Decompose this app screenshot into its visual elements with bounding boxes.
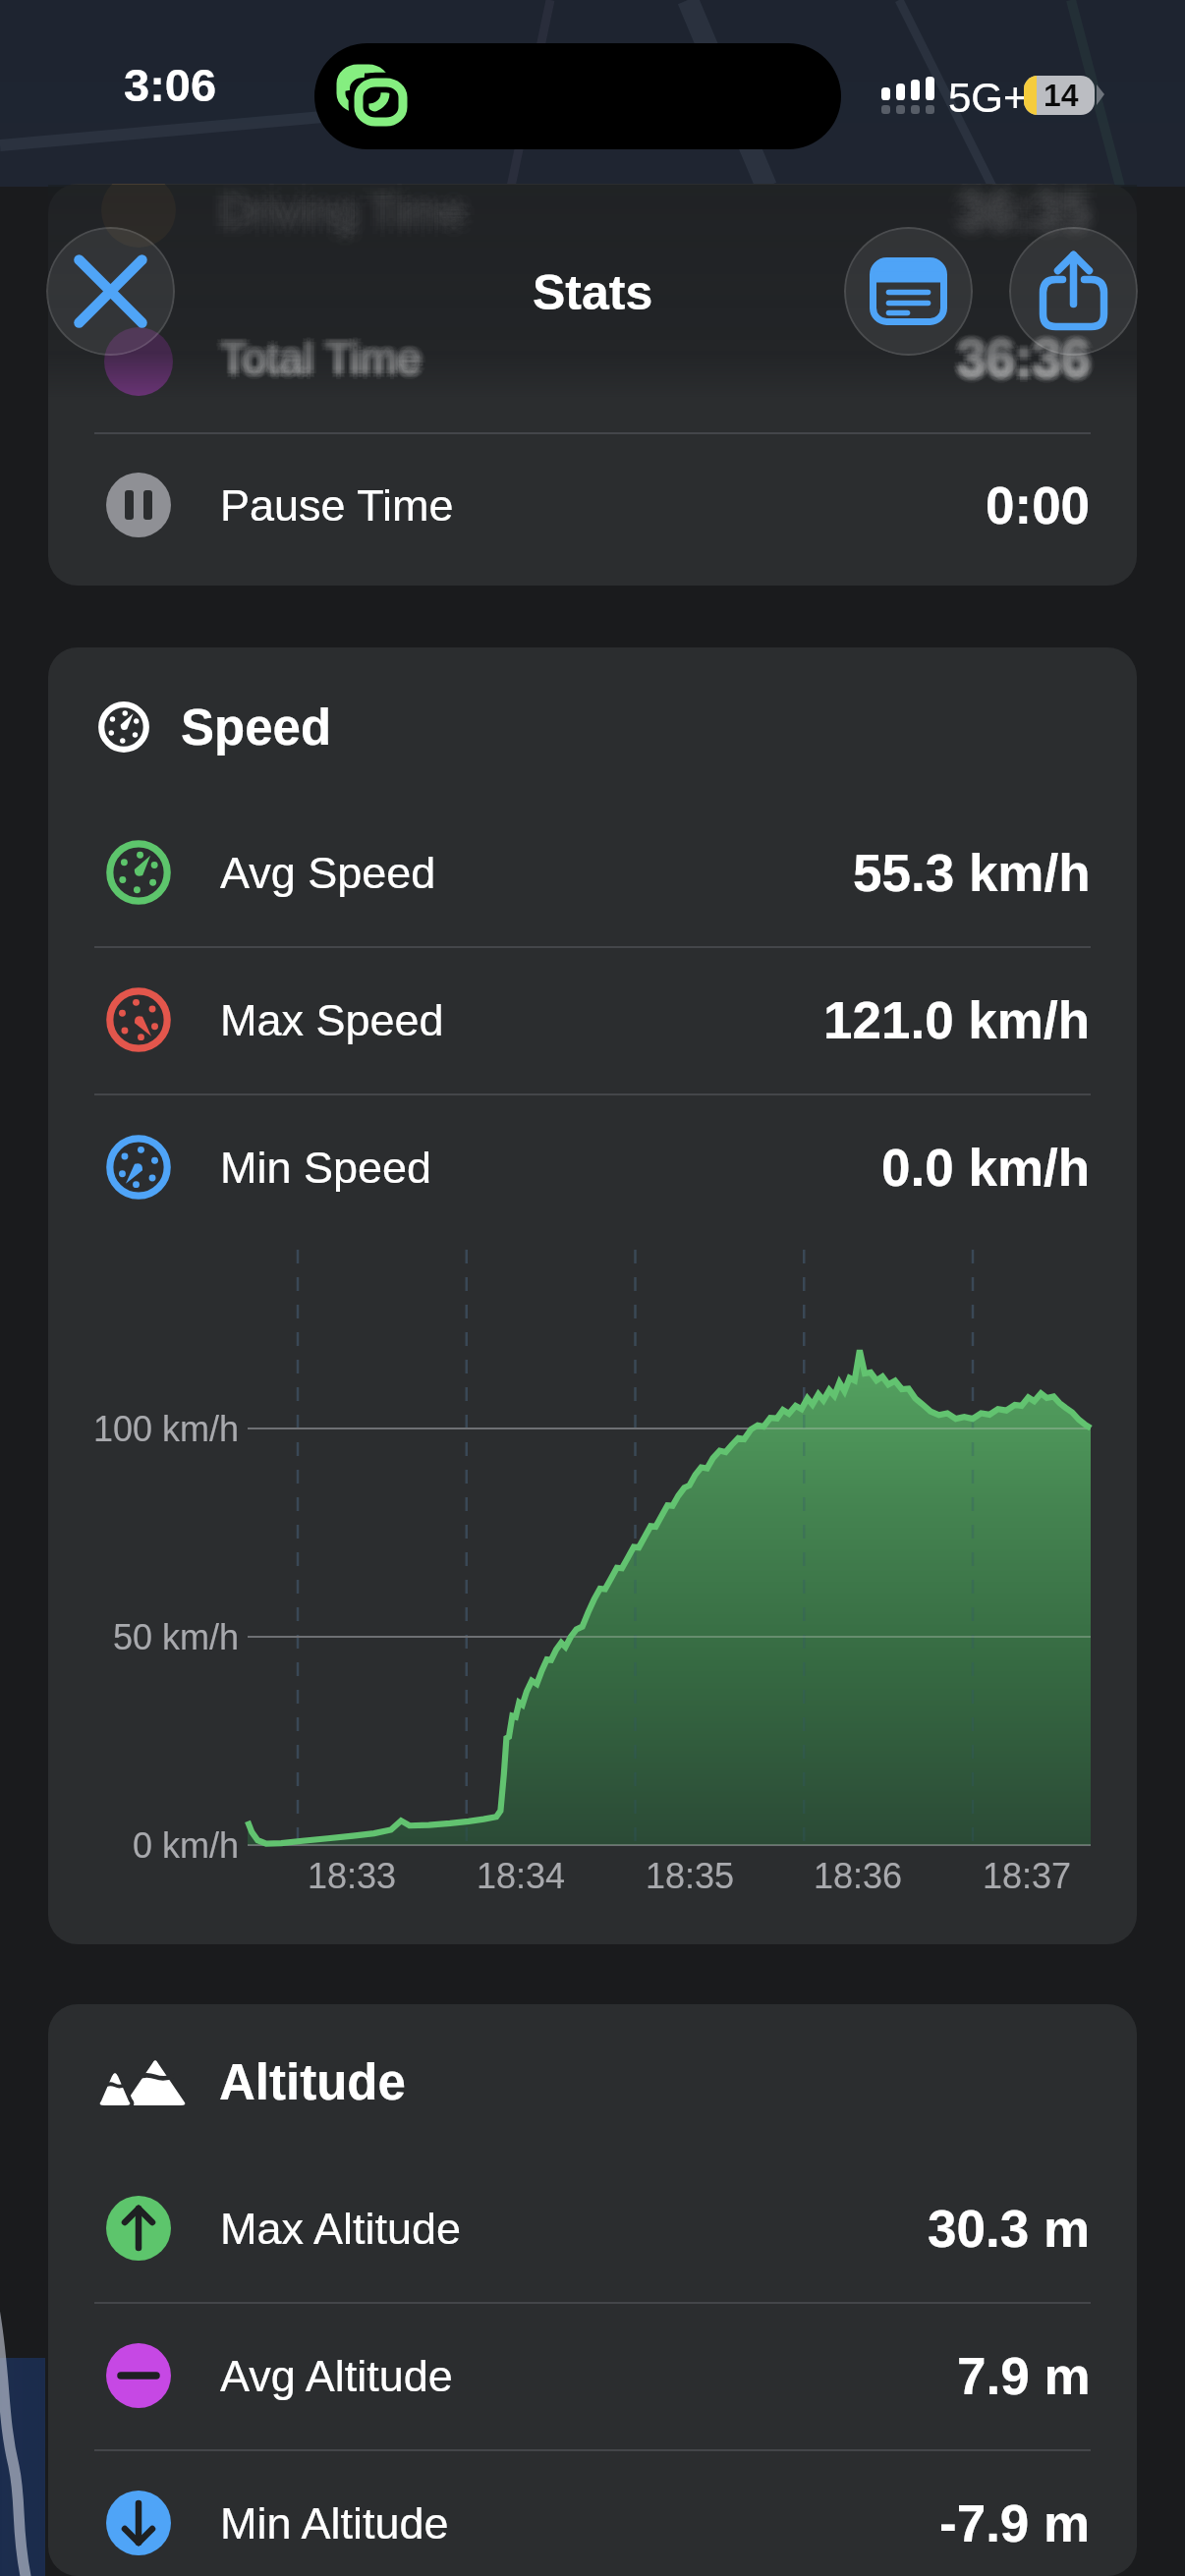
staticText: Avg Speed bbox=[220, 848, 436, 897]
staticText: 36:36 bbox=[961, 329, 1095, 387]
staticText: Driving Time bbox=[220, 184, 467, 231]
staticText: Driving Time bbox=[212, 194, 459, 243]
staticText: Max Altitude bbox=[220, 2204, 462, 2253]
staticText: Total Time bbox=[220, 328, 423, 377]
staticText: 36:36 bbox=[960, 332, 1094, 390]
staticText: Stats bbox=[533, 265, 653, 320]
button[interactable]: Max Speed bbox=[48, 946, 1137, 1093]
staticText: 36:35 bbox=[957, 184, 1091, 236]
button[interactable]: Avg Speed bbox=[48, 799, 1137, 946]
staticText: Total Time bbox=[221, 332, 423, 381]
staticText: Total Time bbox=[217, 330, 420, 379]
staticText: 100 km/h bbox=[93, 1409, 240, 1448]
staticText: 7.9 m bbox=[957, 2347, 1091, 2405]
staticText: 36:36 bbox=[957, 331, 1091, 389]
staticText: 0 km/h bbox=[133, 1825, 240, 1865]
staticText: 36:36 bbox=[957, 325, 1091, 383]
button[interactable]: Min Speed bbox=[48, 1093, 1137, 1241]
staticText: 36:35 bbox=[962, 187, 1096, 245]
button[interactable]: Min Altitude bbox=[48, 2449, 1137, 2576]
button[interactable]: Notes bbox=[844, 227, 973, 356]
staticText: 18:34 bbox=[477, 1856, 566, 1895]
staticText: 18:35 bbox=[646, 1856, 735, 1895]
staticText: Total Time bbox=[217, 336, 420, 385]
staticText: 36:35 bbox=[957, 186, 1091, 244]
staticText: 36:36 bbox=[958, 330, 1092, 388]
staticText: 36:36 bbox=[960, 326, 1094, 384]
staticText: Driving Time bbox=[212, 184, 459, 227]
staticText: 36:36 bbox=[957, 335, 1091, 393]
staticText: Total Time bbox=[218, 333, 421, 382]
staticText: 36:36 bbox=[955, 329, 1089, 387]
staticText: Total Time bbox=[221, 334, 423, 383]
staticText: 36:35 bbox=[962, 184, 1096, 235]
staticText: Driving Time bbox=[217, 189, 464, 238]
staticText: Driving Time bbox=[225, 191, 472, 240]
staticText: Min Altitude bbox=[220, 2498, 449, 2548]
staticText: 36:35 bbox=[953, 184, 1087, 240]
staticText: Max Speed bbox=[220, 995, 444, 1044]
staticText: 0.0 km/h bbox=[881, 1139, 1091, 1197]
staticText: 0:00 bbox=[986, 476, 1091, 534]
staticText: Driving Time bbox=[215, 184, 462, 230]
staticText: -7.9 m bbox=[939, 2494, 1091, 2552]
staticText: Driving Time bbox=[228, 184, 475, 227]
staticText: 36:36 bbox=[958, 328, 1092, 386]
button[interactable]: Pause Time bbox=[48, 431, 1137, 579]
staticText: Driving Time bbox=[220, 184, 467, 224]
staticText: 14 bbox=[1044, 78, 1079, 113]
staticText: 36:36 bbox=[961, 333, 1095, 391]
staticText: 3:06 bbox=[124, 59, 217, 111]
staticText: 36:35 bbox=[954, 185, 1088, 243]
staticText: Total Time bbox=[220, 329, 423, 378]
staticText: 30.3 m bbox=[928, 2200, 1091, 2258]
staticText: Driving Time bbox=[231, 186, 478, 235]
button[interactable]: Max Altitude bbox=[48, 2155, 1137, 2302]
staticText: 36:35 bbox=[964, 184, 1098, 240]
staticText: Total Time bbox=[223, 336, 425, 385]
staticText: 36:36 bbox=[954, 332, 1088, 390]
staticText: Total Time bbox=[219, 334, 422, 383]
staticText: 36:35 bbox=[968, 184, 1101, 240]
staticText: 36:36 bbox=[954, 326, 1088, 384]
button[interactable]: Avg Altitude bbox=[48, 2302, 1137, 2449]
staticText: 36:36 bbox=[952, 329, 1086, 387]
staticText: 36:35 bbox=[954, 184, 1088, 237]
staticText: Driving Time bbox=[223, 184, 470, 232]
staticText: 36:36 bbox=[957, 324, 1091, 382]
staticText: 36:36 bbox=[953, 333, 1087, 391]
staticText: Driving Time bbox=[220, 184, 467, 228]
staticText: Driving Time bbox=[215, 191, 462, 240]
staticText: Speed bbox=[181, 700, 332, 756]
staticText: Total Time bbox=[226, 333, 428, 382]
staticText: 36:35 bbox=[957, 184, 1091, 229]
staticText: 36:36 bbox=[961, 325, 1095, 383]
staticText: 36:35 bbox=[950, 184, 1084, 240]
staticText: Driving Time bbox=[223, 189, 470, 238]
staticText: Total Time bbox=[224, 333, 426, 382]
staticText: 36:36 bbox=[959, 329, 1093, 387]
staticText: 36:35 bbox=[965, 190, 1099, 248]
staticText: 36:35 bbox=[957, 184, 1091, 240]
staticText: 36:36 bbox=[963, 329, 1097, 387]
staticText: Driving Time bbox=[220, 190, 467, 239]
staticText: 36:36 bbox=[953, 329, 1087, 387]
staticText: Altitude bbox=[219, 2054, 406, 2110]
staticText: Total Time bbox=[215, 333, 418, 382]
staticText: 36:35 bbox=[960, 185, 1094, 243]
staticText: Total Time bbox=[220, 331, 423, 380]
staticText: 121.0 km/h bbox=[823, 991, 1091, 1049]
staticText: 36:35 bbox=[961, 184, 1095, 240]
staticText: 36:36 bbox=[957, 333, 1091, 391]
staticText: 36:35 bbox=[952, 184, 1086, 235]
button[interactable]: Close bbox=[46, 227, 175, 356]
staticText: Driving Time bbox=[220, 193, 467, 242]
staticText: Driving Time bbox=[225, 184, 472, 230]
staticText: 36:35 bbox=[957, 193, 1091, 251]
staticText: Total Time bbox=[224, 329, 426, 378]
staticText: 18:36 bbox=[814, 1856, 903, 1895]
button[interactable]: Share bbox=[1009, 227, 1138, 356]
staticText: Driving Time bbox=[213, 186, 460, 235]
staticText: Driving Time bbox=[224, 186, 471, 235]
staticText: 36:35 bbox=[949, 190, 1083, 248]
